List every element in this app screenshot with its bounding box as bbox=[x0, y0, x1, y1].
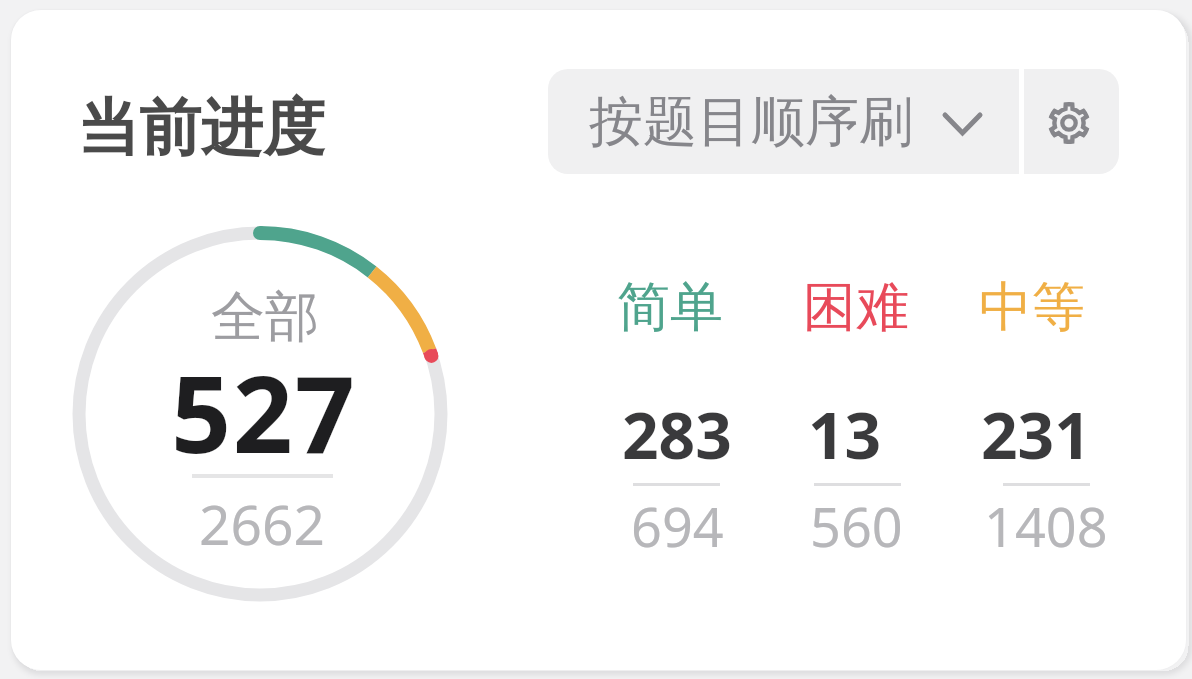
staticText: 按题目顺序刷 bbox=[589, 88, 913, 156]
button[interactable] bbox=[1024, 69, 1119, 174]
staticText: 当前进度 bbox=[77, 89, 325, 167]
staticText: 13 bbox=[808, 391, 882, 478]
staticText: 560 bbox=[810, 489, 903, 563]
button[interactable]: 按题目顺序刷 bbox=[548, 69, 1019, 174]
staticText: 694 bbox=[631, 489, 724, 563]
staticText: 全部 bbox=[211, 283, 319, 351]
staticText: 2662 bbox=[199, 486, 325, 561]
staticText: 简单 bbox=[617, 274, 723, 341]
staticText: 231 bbox=[981, 391, 1091, 478]
staticText: 困难 bbox=[803, 274, 909, 341]
staticText: 283 bbox=[622, 391, 732, 478]
staticText: 中等 bbox=[979, 274, 1085, 341]
staticText: 527 bbox=[171, 341, 357, 484]
staticText: 1408 bbox=[984, 489, 1108, 563]
